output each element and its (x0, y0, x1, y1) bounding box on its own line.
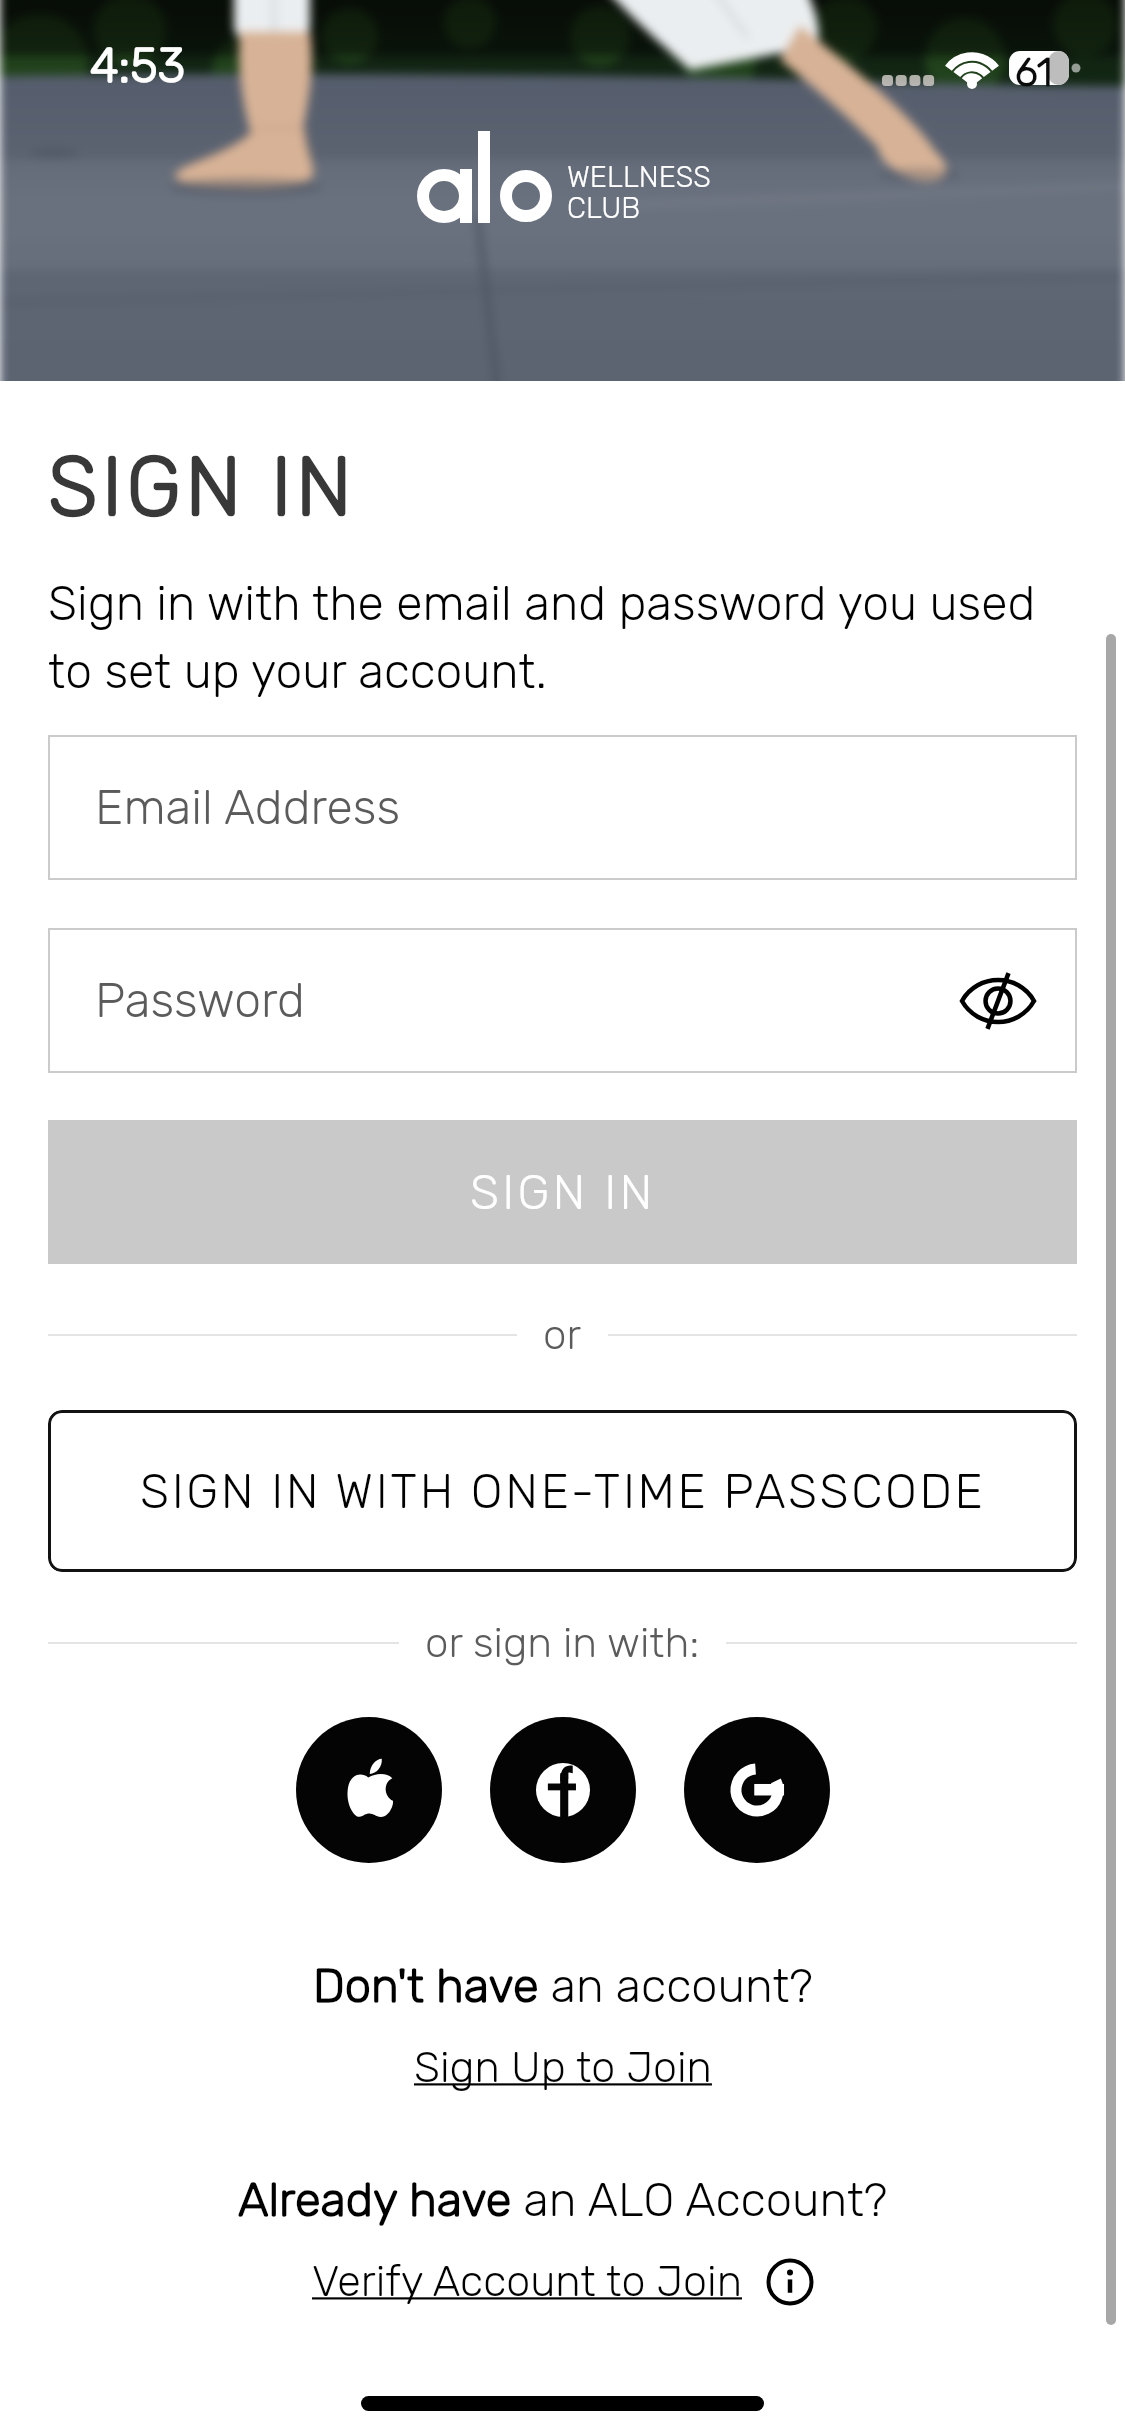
staticText: WELLNESS (567, 160, 711, 194)
button[interactable]: Sign in with Facebook (490, 1717, 636, 1863)
staticText: SIGN IN (48, 438, 356, 535)
staticText: 4:53 (90, 37, 186, 94)
staticText: CLUB (567, 191, 641, 225)
staticText: or (543, 1310, 582, 1360)
button[interactable]: Password (48, 928, 1077, 1073)
button[interactable]: Email Address (48, 735, 1077, 880)
staticText: Verify Account to Join (312, 2256, 742, 2307)
staticText: or sign in with: (425, 1618, 700, 1668)
staticText: 61 (1015, 50, 1053, 96)
staticText: Sign Up to Join (414, 2042, 712, 2093)
staticText: Don't have an account? (313, 1958, 813, 2014)
button[interactable]: SIGN IN (48, 1120, 1077, 1264)
button[interactable]: Sign Up to Join (414, 2042, 712, 2093)
staticText: SIGN IN (470, 1164, 656, 1221)
staticText: SIGN IN WITH ONE-TIME PASSCODE (140, 1463, 986, 1520)
button[interactable]: Verify Account to Join (312, 2256, 814, 2307)
staticText: Already have an ALO Account? (238, 2172, 888, 2228)
staticText: Password (95, 972, 305, 1029)
other: Show password (959, 972, 1037, 1030)
staticText: Sign in with the email and password you … (48, 575, 1068, 700)
button[interactable]: SIGN IN WITH ONE-TIME PASSCODE (48, 1410, 1077, 1572)
staticText: Email Address (95, 779, 401, 836)
button[interactable]: Sign in with Apple (296, 1717, 442, 1863)
button[interactable]: Sign in with Google (684, 1717, 830, 1863)
